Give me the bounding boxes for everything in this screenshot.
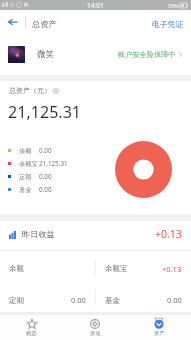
staticText: 余额 [19, 147, 39, 155]
button[interactable]: 定期 [0, 282, 95, 312]
staticText: 0.00 [167, 295, 182, 305]
staticText: 0.00 [39, 172, 52, 181]
staticText: 余额 [9, 264, 24, 273]
staticText: 定期 [19, 173, 39, 181]
staticText: 电子凭证 [152, 19, 184, 29]
button[interactable]: Back [0, 10, 24, 33]
staticText: 微笑 [37, 49, 55, 60]
staticText: 0.00 [71, 295, 86, 305]
button[interactable]: 微笑 [0, 33, 191, 75]
staticText: 昨日收益 [22, 229, 55, 239]
staticText: 21,125.31 [8, 101, 82, 123]
staticText: +0.13 [162, 264, 182, 274]
staticText: 账户安全险保障中 [118, 50, 176, 59]
staticText: 21,125.31 [39, 159, 68, 168]
staticText: 0.00 [39, 146, 52, 155]
staticText: 基金 [105, 296, 120, 305]
staticText: 总资产（元） [9, 86, 51, 95]
button[interactable]: 派送 [63, 315, 127, 340]
staticText: 定期 [9, 296, 24, 305]
staticText: 14:01 [87, 1, 104, 10]
button[interactable]: 精选 [0, 315, 63, 340]
staticText: 精选 [26, 330, 37, 337]
button[interactable]: 昨日收益 [0, 221, 191, 250]
button[interactable]: 余额宝 [95, 251, 191, 282]
button[interactable]: 余额 [0, 251, 95, 282]
staticText: 资产 [154, 330, 165, 337]
staticText: 39% [168, 2, 179, 9]
staticText: 余额宝 [19, 160, 39, 168]
staticText: 基金 [19, 186, 39, 194]
staticText: 总资产 [32, 19, 57, 29]
button[interactable]: 电子凭证 [152, 10, 191, 33]
staticText: 派送 [90, 330, 101, 337]
button[interactable]: 基金 [95, 282, 191, 312]
staticText: +0.13 [155, 227, 182, 241]
button[interactable]: 资产 [127, 315, 191, 340]
staticText: 余额宝 [105, 264, 128, 273]
staticText: 0.00 [39, 185, 52, 194]
